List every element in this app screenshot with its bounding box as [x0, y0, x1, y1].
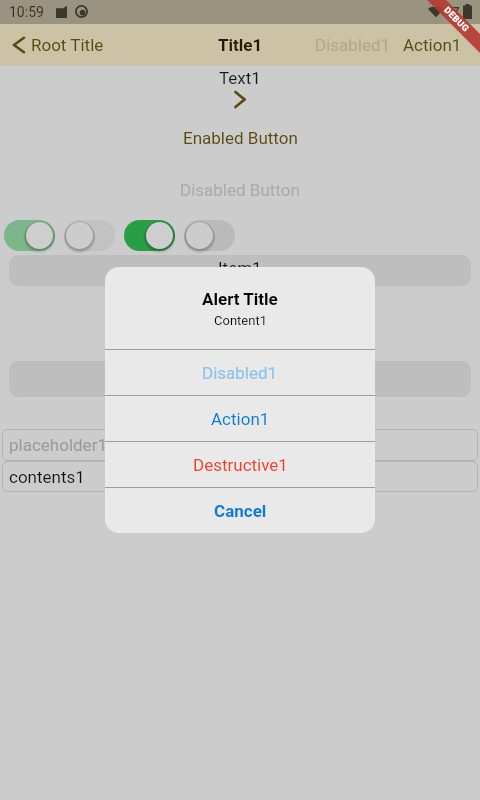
- button[interactable]: Action1: [105, 396, 375, 441]
- button[interactable]: Root Title: [0, 31, 114, 59]
- button[interactable]: Switch on: [4, 220, 55, 251]
- staticText: Root Title: [31, 35, 104, 55]
- staticText: Action1: [211, 409, 270, 429]
- button[interactable]: placeholder1: [2, 429, 478, 461]
- button[interactable]: Switch off: [184, 220, 235, 251]
- staticText: 10:59: [9, 4, 44, 20]
- staticText: Action1: [403, 35, 462, 55]
- staticText: Item1: [218, 258, 262, 278]
- button[interactable]: Item2: [9, 361, 471, 397]
- button[interactable]: Action1: [395, 29, 480, 61]
- button[interactable]: Forward: [0, 89, 480, 109]
- staticText: Alert Title: [202, 289, 278, 309]
- staticText: Content1: [214, 313, 267, 328]
- button[interactable]: Item1: [9, 255, 471, 286]
- staticText: Disabled1: [202, 363, 278, 383]
- button[interactable]: Disabled1: [311, 29, 395, 61]
- staticText: placeholder1: [9, 435, 107, 455]
- staticText: Disabled Button: [180, 180, 300, 198]
- staticText: Enabled Button: [183, 128, 298, 146]
- button[interactable]: Destructive1: [105, 442, 375, 487]
- button[interactable]: contents1: [2, 461, 478, 492]
- staticText: contents1: [9, 467, 85, 487]
- button[interactable]: Cancel: [105, 488, 375, 533]
- button[interactable]: Switch off: [64, 220, 115, 251]
- button[interactable]: Enabled Button: [0, 128, 480, 146]
- staticText: Destructive1: [193, 455, 288, 475]
- staticText: Disabled1: [315, 35, 391, 55]
- button[interactable]: Switch on: [124, 220, 175, 251]
- staticText: Cancel: [214, 501, 267, 521]
- button[interactable]: Disabled1: [105, 350, 375, 395]
- staticText: Title1: [218, 35, 263, 55]
- staticText: Text1: [219, 68, 261, 86]
